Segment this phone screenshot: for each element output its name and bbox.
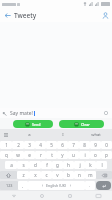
button[interactable]: 5 — [46, 141, 57, 149]
button[interactable]: Back — [0, 8, 14, 22]
staticText: Say mate! — [10, 110, 33, 117]
staticText: m — [88, 172, 93, 178]
button[interactable]: Clear — [59, 120, 104, 128]
staticText: r — [40, 152, 42, 158]
button[interactable]: u — [68, 151, 79, 159]
staticText: q — [5, 152, 8, 158]
button[interactable]: Shift — [0, 171, 17, 179]
button[interactable]: z — [17, 171, 29, 179]
staticText: 0 — [105, 142, 108, 148]
staticText: e — [28, 152, 31, 158]
button[interactable]: a — [5, 161, 17, 169]
button[interactable]: Hide keyboard — [0, 191, 28, 200]
button[interactable]: g — [52, 161, 63, 169]
button[interactable]: I — [46, 129, 79, 140]
button[interactable]: v — [52, 171, 63, 179]
button[interactable]: Tweety — [14, 11, 98, 20]
staticText: o — [94, 152, 97, 158]
button[interactable]: f — [41, 161, 52, 169]
button[interactable]: 4 — [35, 141, 46, 149]
button[interactable]: 8 — [79, 141, 90, 149]
staticText: 5 — [50, 142, 53, 148]
button[interactable]: Send — [13, 120, 53, 128]
staticText: 1 — [5, 142, 8, 148]
button[interactable]: e — [24, 151, 35, 159]
button[interactable]: 2 — [12, 141, 24, 149]
button[interactable]: Keyboard menu — [0, 129, 12, 140]
button[interactable]: . — [85, 181, 95, 190]
staticText: d — [34, 162, 37, 168]
staticText: s — [22, 162, 25, 168]
button[interactable]: 7 — [68, 141, 79, 149]
staticText: b — [67, 172, 70, 178]
button[interactable]: what — [79, 129, 112, 140]
button[interactable]: m — [85, 171, 96, 179]
staticText: 9 — [94, 142, 97, 148]
staticText: j — [79, 162, 81, 168]
button[interactable]: t — [46, 151, 57, 159]
button[interactable]: p — [101, 151, 112, 159]
button[interactable]: x — [29, 171, 41, 179]
button[interactable]: s — [17, 161, 29, 169]
button[interactable]: 9 — [90, 141, 101, 149]
staticText: f — [46, 162, 48, 168]
button[interactable]: y — [57, 151, 68, 159]
button[interactable]: 6 — [57, 141, 68, 149]
staticText: i — [84, 152, 86, 158]
button[interactable]: r — [35, 151, 46, 159]
button[interactable]: Switch keyboard — [84, 191, 112, 200]
button[interactable]: Space — [28, 181, 85, 190]
button[interactable]: Home — [28, 191, 56, 200]
staticText: c — [45, 172, 48, 178]
button[interactable]: b — [63, 171, 74, 179]
staticText: x — [34, 172, 37, 178]
staticText: p — [105, 152, 108, 158]
button[interactable]: j — [74, 161, 85, 169]
button[interactable]: Profile — [98, 8, 112, 22]
staticText: y — [61, 152, 64, 158]
button[interactable]: 0 — [101, 141, 112, 149]
staticText: . — [89, 183, 91, 189]
button[interactable]: , — [18, 181, 28, 190]
staticText: what — [91, 132, 101, 138]
staticText: Send — [32, 122, 41, 127]
button[interactable]: 3 — [24, 141, 35, 149]
staticText: n — [78, 172, 81, 178]
staticText: k — [89, 162, 92, 168]
staticText: 3 — [28, 142, 31, 148]
button[interactable]: l — [96, 161, 107, 169]
button[interactable]: w — [12, 151, 24, 159]
staticText: h — [67, 162, 70, 168]
staticText: Clear — [81, 122, 90, 127]
staticText: a — [28, 132, 31, 138]
button[interactable]: o — [90, 151, 101, 159]
staticText: z — [22, 172, 25, 178]
staticText: w — [16, 152, 20, 158]
staticText: l — [101, 162, 103, 168]
staticText: g — [56, 162, 59, 168]
staticText: I — [62, 132, 64, 138]
staticText: t — [51, 152, 53, 158]
button[interactable]: d — [29, 161, 41, 169]
button[interactable]: h — [63, 161, 74, 169]
button[interactable]: n — [74, 171, 85, 179]
button[interactable]: 1 — [0, 141, 12, 149]
staticText: 7 — [72, 142, 75, 148]
button[interactable]: q — [0, 151, 12, 159]
button[interactable]: i — [79, 151, 90, 159]
button[interactable]: Say mate! — [0, 108, 112, 118]
button[interactable]: c — [41, 171, 52, 179]
staticText: , — [22, 183, 24, 189]
staticText: u — [72, 152, 75, 158]
button[interactable]: Backspace — [96, 171, 112, 179]
staticText: 4 — [39, 142, 42, 148]
staticText: 6 — [61, 142, 64, 148]
button[interactable]: Enter — [96, 181, 111, 190]
button[interactable]: k — [85, 161, 96, 169]
button[interactable]: Recents — [56, 191, 84, 200]
staticText: 8 — [83, 142, 86, 148]
button[interactable]: 123 — [0, 181, 18, 190]
button[interactable]: a — [12, 129, 46, 140]
button[interactable]: Attach — [101, 108, 111, 118]
staticText: 2 — [17, 142, 20, 148]
